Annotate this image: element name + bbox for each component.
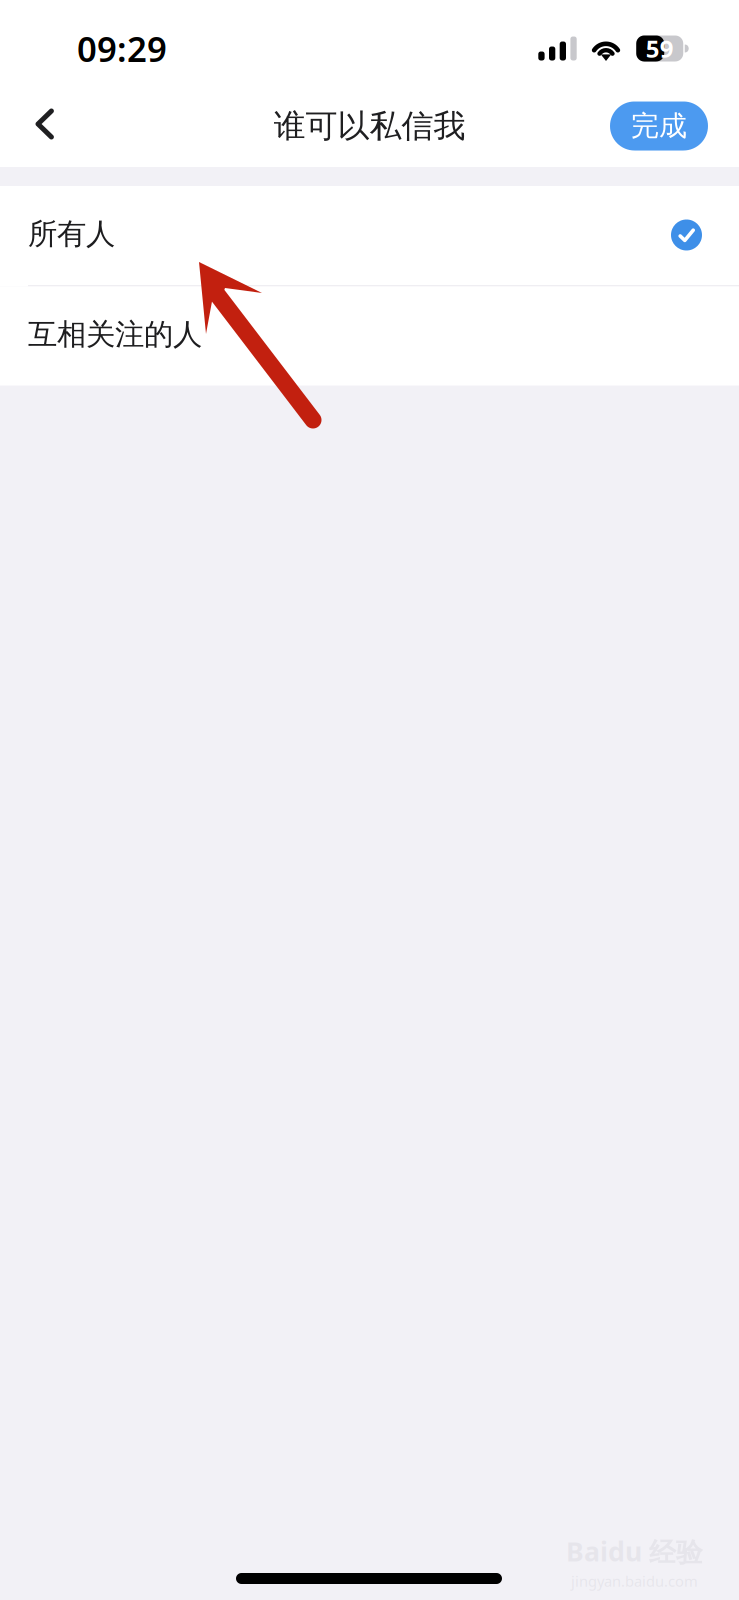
staticText: 谁可以私信我 [273,106,465,146]
button[interactable]: 互相关注的人 [0,286,739,385]
staticText: 完成 [631,109,687,143]
staticText: 59 [646,32,674,65]
staticText: Baidu 经验 [566,1533,703,1569]
staticText: 所有人 [28,216,115,252]
button[interactable]: 所有人 [0,186,739,285]
staticText: 互相关注的人 [28,316,202,352]
staticText: jingyan.baidu.com [571,1571,698,1591]
staticText: 09:29 [77,25,167,72]
button[interactable]: 完成 [610,101,708,150]
button[interactable]: 返回 [0,90,80,162]
